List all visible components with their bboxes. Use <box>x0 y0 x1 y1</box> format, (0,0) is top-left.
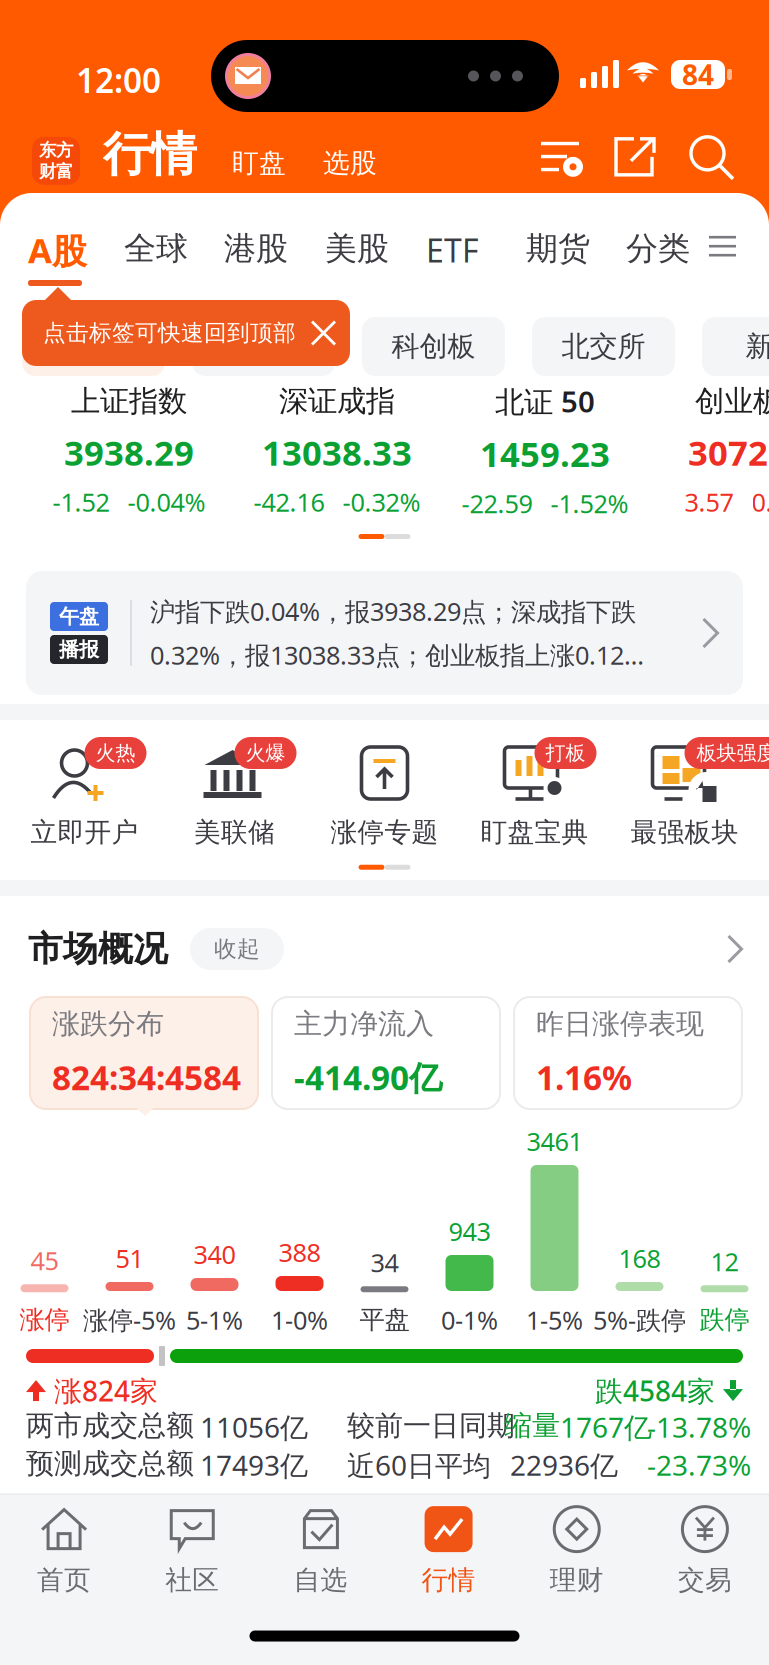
staticText: 涨停-5% <box>83 1303 176 1337</box>
staticText: 新股 <box>745 329 769 364</box>
button[interactable]: 期货 <box>526 229 590 268</box>
button[interactable]: 北证 50 <box>441 391 649 511</box>
staticText: 34 <box>370 1246 398 1279</box>
staticText: 17493亿 <box>200 1446 308 1484</box>
staticText: A股 <box>28 227 87 273</box>
staticText: 1-5% <box>526 1303 583 1337</box>
button[interactable]: A股 <box>28 227 87 273</box>
button[interactable]: 板块强度 <box>609 744 759 849</box>
staticText: 跌4584家 <box>595 1372 715 1409</box>
button[interactable]: 主力净流入 <box>272 997 500 1109</box>
staticText: 打板 <box>545 741 585 765</box>
staticText: 全球 <box>124 229 188 268</box>
staticText: 1767亿 <box>560 1408 652 1446</box>
button[interactable]: 沪深京 <box>22 317 165 376</box>
staticText: 168 <box>618 1241 660 1275</box>
button[interactable]: 昨日涨停表现 <box>514 997 742 1109</box>
button[interactable]: 市场概况 <box>0 918 769 980</box>
staticText: 主力净流入 <box>294 1007 434 1041</box>
staticText: 行情 <box>422 1564 476 1596</box>
button[interactable]: 社区 <box>128 1499 256 1603</box>
staticText: 13038.33 <box>262 429 412 475</box>
staticText: 交易 <box>678 1564 732 1596</box>
staticText: 财富 <box>39 161 73 182</box>
staticText: 45 <box>30 1244 58 1277</box>
staticText: 收起 <box>214 935 260 963</box>
staticText: 创业板指 <box>695 383 769 419</box>
staticText: 5%-跌停 <box>593 1303 686 1337</box>
staticText: 涨停 <box>19 1304 69 1335</box>
staticText: 火爆 <box>245 741 285 765</box>
staticText: 平盘 <box>359 1304 409 1335</box>
button[interactable]: 美股 <box>325 229 389 268</box>
staticText: 市场概况 <box>28 928 168 970</box>
button[interactable]: 行情 <box>384 1499 513 1603</box>
button[interactable]: Sort settings <box>541 140 583 176</box>
staticText: 3072.65 <box>688 429 769 475</box>
staticText: 1459.23 <box>480 431 610 477</box>
button[interactable]: 打板 <box>459 744 609 849</box>
button[interactable]: East Money <box>32 137 80 185</box>
staticText: 预测成交总额 <box>26 1446 194 1481</box>
button[interactable]: Search <box>691 137 735 181</box>
button[interactable]: 行情 <box>103 126 197 183</box>
button[interactable]: 分类 <box>626 229 690 268</box>
staticText: -13.78% <box>647 1408 751 1446</box>
staticText: 340 <box>193 1237 235 1271</box>
staticText: 11056亿 <box>200 1408 308 1446</box>
button[interactable]: 午盘 <box>0 571 769 695</box>
button[interactable]: 涨跌分布 <box>30 997 258 1109</box>
staticText: 0.12% <box>751 485 769 519</box>
button[interactable]: Dismiss tip <box>296 320 336 345</box>
staticText: 创业板 <box>221 329 305 364</box>
staticText: 涨824家 <box>54 1372 158 1409</box>
staticText: 近60日平均 <box>347 1446 491 1484</box>
staticText: 最强板块 <box>630 816 738 849</box>
button[interactable]: ETF <box>426 229 479 271</box>
button[interactable]: 创业板 <box>192 317 335 376</box>
staticText: 社区 <box>165 1564 219 1596</box>
button[interactable]: 火爆 <box>159 744 309 849</box>
staticText: 51 <box>115 1241 143 1275</box>
staticText: 期货 <box>526 229 590 268</box>
staticText: 1.16% <box>536 1055 632 1099</box>
staticText: 0-1% <box>441 1303 498 1337</box>
staticText: 分类 <box>626 229 690 268</box>
button[interactable]: 火热 <box>9 744 159 849</box>
staticText: 立即开户 <box>30 816 138 849</box>
staticText: 沪深京 <box>51 329 135 364</box>
button[interactable]: 理财 <box>513 1499 641 1603</box>
button[interactable]: 港股 <box>224 229 288 268</box>
staticText: -0.32% <box>342 485 420 519</box>
button[interactable]: 新股 <box>702 317 769 376</box>
button[interactable]: 盯盘 <box>232 147 286 180</box>
button[interactable]: 科创板 <box>362 317 505 376</box>
button[interactable]: 自选 <box>256 1499 384 1603</box>
button[interactable]: 交易 <box>641 1499 769 1603</box>
staticText: 盯盘宝典 <box>480 816 588 849</box>
button[interactable]: Share <box>614 137 656 179</box>
staticText: 选股 <box>323 147 377 180</box>
staticText: 港股 <box>224 229 288 268</box>
staticText: 美联储 <box>194 816 275 849</box>
staticText: -22.59 <box>461 487 532 520</box>
staticText: -1.52 <box>52 485 109 519</box>
staticText: 东方 <box>39 139 73 161</box>
button[interactable]: 选股 <box>323 147 377 180</box>
button[interactable]: 全球 <box>124 229 188 268</box>
staticText: 3.57 <box>684 485 733 519</box>
staticText: 较前一日同期 <box>347 1408 515 1443</box>
button[interactable]: 北交所 <box>532 317 675 376</box>
staticText: 5-1% <box>186 1303 243 1337</box>
button[interactable]: 创业板指 <box>649 391 769 511</box>
staticText: 涨跌分布 <box>52 1007 164 1041</box>
button[interactable]: 首页 <box>0 1499 128 1603</box>
staticText: 1-0% <box>271 1303 328 1337</box>
staticText: 943 <box>448 1214 490 1248</box>
staticText: 沪指下跌0.04%，报3938.29点；深成指下跌 <box>150 594 636 628</box>
button[interactable]: 涨停专题 <box>309 744 459 849</box>
staticText: -42.16 <box>253 485 324 519</box>
button[interactable]: All categories <box>709 236 736 257</box>
button[interactable]: 上证指数 <box>25 391 233 511</box>
button[interactable]: 深证成指 <box>233 391 441 511</box>
